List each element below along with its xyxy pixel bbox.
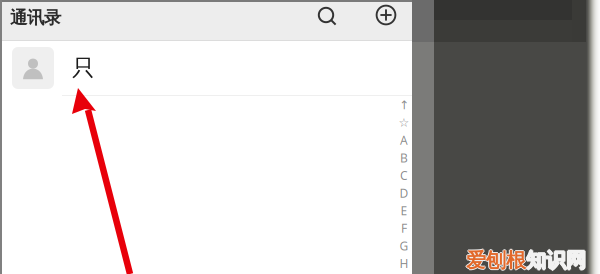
staticText: E (400, 203, 407, 218)
button[interactable]: 只 (12, 46, 412, 90)
staticText: C (400, 167, 408, 183)
staticText: 只 (72, 54, 102, 82)
staticText: 爱刨根知识网 (466, 249, 586, 274)
staticText: B (400, 150, 408, 166)
staticText: 爱刨根 (466, 248, 526, 273)
button[interactable]: Add (375, 4, 399, 28)
staticText: 爱刨根知识网 (467, 248, 587, 273)
staticText: A (400, 132, 408, 148)
staticText: 通讯录 (10, 7, 61, 28)
button[interactable]: Search (315, 4, 339, 28)
staticText: G (399, 238, 408, 254)
staticText: 爱刨根知识网 (466, 247, 586, 272)
staticText: 知识网 (526, 248, 586, 273)
staticText: F (401, 220, 407, 236)
staticText: H (399, 255, 408, 271)
staticText: D (399, 185, 408, 201)
staticText: 爱刨根知识网 (465, 248, 585, 273)
staticText: ↑ (399, 98, 409, 112)
staticText: ☆ (398, 116, 409, 129)
